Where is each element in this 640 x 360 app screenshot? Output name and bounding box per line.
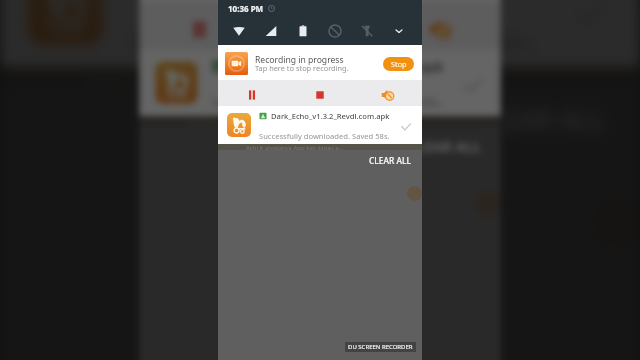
staticText: Achi it anypance App key zanay a... <box>246 144 344 150</box>
button[interactable]: CLEAR ALL <box>359 151 422 170</box>
button[interactable]: Stop recording <box>286 80 354 106</box>
staticText: CLEAR ALL <box>593 41 640 102</box>
button[interactable]: Dark_Echo_v1.3.2_Revdl.com.apk <box>139 49 501 116</box>
button[interactable]: Stop <box>383 57 414 71</box>
staticText: Tap here to stop recording. <box>255 63 349 73</box>
button[interactable]: DU Recorder floating button <box>407 186 422 201</box>
button[interactable]: CLEAR ALL <box>442 89 640 149</box>
staticText: Dark_Echo_v1.3.2_Revdl.com.apk <box>271 111 390 121</box>
button[interactable]: Stop recording <box>260 3 380 49</box>
staticText: CLEAR ALL <box>407 136 481 155</box>
button[interactable]: CLEAR ALL <box>389 129 501 162</box>
button[interactable]: Pause <box>218 80 286 106</box>
staticText: CLEAR ALL <box>474 101 606 136</box>
button[interactable]: Recording in progress <box>139 0 501 3</box>
staticText: Achi it anypance App key zanay a... <box>88 67 395 86</box>
staticText: Successfully downloaded. Saved 58s. <box>259 131 390 141</box>
staticText: CLEAR ALL <box>369 155 411 166</box>
staticText: Stop <box>391 59 407 69</box>
staticText: Dark_Echo_v1.3.2_Revdl.com.apk <box>233 58 444 75</box>
button[interactable]: Expand quick settings <box>383 16 415 44</box>
button[interactable]: CLEAR ALL <box>537 19 640 124</box>
button[interactable]: Flashlight <box>351 16 383 44</box>
button[interactable]: Dark_Echo_v1.3.2_Revdl.com.apk <box>218 106 422 144</box>
button[interactable]: Do not disturb <box>319 16 351 44</box>
staticText: Recording in progress <box>255 54 344 66</box>
button[interactable]: Recording in progress <box>218 45 422 80</box>
staticText: Successfully downloaded. Saved 58s. <box>212 93 444 111</box>
staticText: Achi it anypance App key zanay a... <box>189 116 363 127</box>
staticText: Successfully downloaded. Saved 58s. <box>128 26 540 57</box>
button[interactable]: Wi-Fi <box>223 16 255 44</box>
button[interactable]: Screen rotation <box>380 3 501 49</box>
button[interactable]: Battery <box>287 16 319 44</box>
button[interactable]: Mobile data <box>255 16 287 44</box>
staticText: DU SCREEN RECORDER <box>348 343 413 351</box>
staticText: Achi it anypance App key zanay a... <box>0 0 454 13</box>
button[interactable]: Dark_Echo_v1.3.2_Revdl.com.apk <box>0 0 640 67</box>
button[interactable]: Pause <box>139 3 260 49</box>
button[interactable]: Screen rotation <box>354 80 422 106</box>
staticText: 10:36 PM <box>228 3 264 14</box>
